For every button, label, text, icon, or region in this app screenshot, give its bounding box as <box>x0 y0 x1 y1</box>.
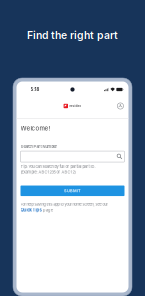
staticText: Welcome! <box>20 125 50 132</box>
button[interactable]: Quick Tips <box>20 207 41 213</box>
staticText: Quick Tips <box>20 207 41 213</box>
staticText: resideo <box>69 104 81 108</box>
staticText: Search Part Number <box>20 144 57 149</box>
staticText: page <box>43 207 53 213</box>
button[interactable]: Account <box>114 100 128 112</box>
staticText: (Example: ABC1235 or ABC12) <box>20 170 75 174</box>
button[interactable]: SUBMIT <box>20 185 124 196</box>
staticText: For help saving this app to your home sc… <box>20 202 107 207</box>
staticText: SUBMIT <box>64 188 81 193</box>
button[interactable] <box>20 151 124 162</box>
staticText: Tip: You can search by full or partial p… <box>20 164 95 169</box>
staticText: 5:18 <box>30 87 39 92</box>
staticText: Find the right part <box>27 29 118 42</box>
